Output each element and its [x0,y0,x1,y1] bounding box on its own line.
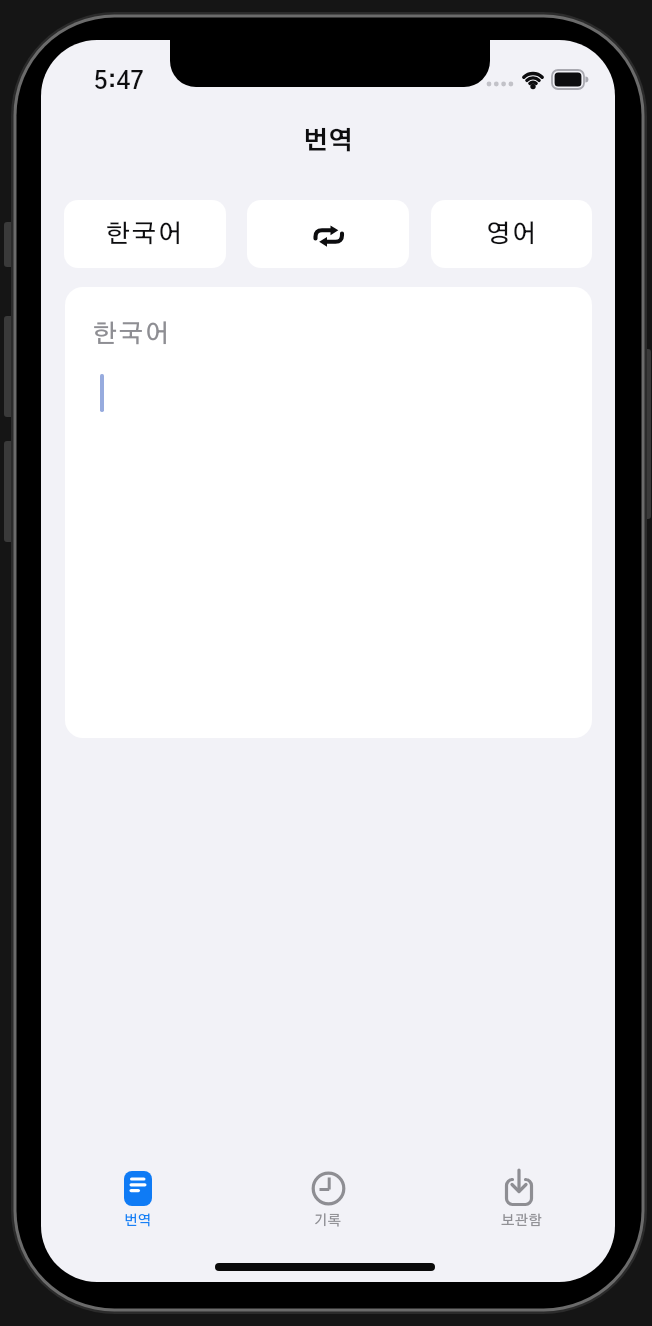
button[interactable] [247,200,409,268]
staticText: 기록 [314,1214,342,1228]
button[interactable]: 영어 [431,200,592,268]
button[interactable]: 한국어 [65,287,592,738]
staticText: 한국어 [106,222,184,247]
staticText: 5:47 [94,70,145,94]
staticText: 번역 [303,129,353,154]
staticText: 영어 [486,222,538,247]
staticText: 번역 [124,1214,152,1228]
button[interactable]: 보관함 [481,1209,561,1233]
staticText: 보관함 [501,1214,542,1228]
button[interactable]: 기록 [288,1209,368,1233]
button[interactable] [471,1165,615,1240]
button[interactable] [288,1165,448,1240]
button[interactable]: 한국어 [64,200,226,268]
staticText: 한국어 [93,322,171,347]
button[interactable] [98,1165,258,1240]
